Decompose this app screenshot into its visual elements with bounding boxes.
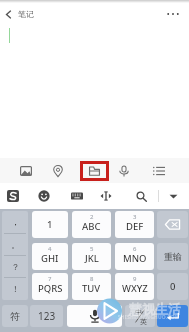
- staticText: 9: [133, 275, 137, 283]
- staticText: 2: [90, 213, 94, 221]
- button[interactable]: Enter: [157, 305, 188, 327]
- button[interactable]: ？: [2, 256, 28, 278]
- staticText: ？: [11, 262, 20, 273]
- staticText: SHISHISHENGHUO.COM: [118, 314, 180, 320]
- button[interactable]: Insert image: [15, 158, 37, 183]
- button[interactable]: Hide keyboard: [162, 183, 184, 209]
- staticText: 3: [133, 213, 137, 221]
- staticText: TUV: [82, 282, 101, 295]
- staticText: 5: [90, 245, 94, 253]
- staticText: 重输: [164, 251, 182, 262]
- staticText: 符: [10, 310, 20, 323]
- button[interactable]: Keyboard settings: [66, 183, 88, 209]
- button[interactable]: Chinese English toggle: [125, 305, 155, 327]
- staticText: 0: [170, 280, 176, 293]
- staticText: ABC: [82, 220, 101, 233]
- button[interactable]: Backspace: [157, 211, 188, 238]
- button[interactable]: 4: [32, 243, 68, 270]
- staticText: MNO: [123, 252, 147, 265]
- button[interactable]: Zero: [157, 273, 188, 300]
- button[interactable]: Redo: [157, 243, 188, 270]
- staticText: JKL: [85, 252, 99, 265]
- button[interactable]: 1: [32, 211, 68, 238]
- button[interactable]: Folder: [80, 161, 109, 181]
- staticText: ，: [11, 216, 20, 227]
- staticText: 。: [11, 239, 20, 250]
- staticText: PQRS: [38, 282, 63, 295]
- button[interactable]: 8: [72, 273, 111, 300]
- button[interactable]: More options: [163, 3, 183, 25]
- staticText: DEF: [126, 220, 144, 233]
- button[interactable]: Numbers: [30, 305, 63, 327]
- staticText: 8: [90, 275, 94, 283]
- button[interactable]: Move cursor: [95, 183, 117, 209]
- button[interactable]: Checklist: [148, 158, 170, 183]
- staticText: GHI: [41, 252, 59, 265]
- button[interactable]: Voice input: [113, 158, 135, 183]
- button[interactable]: Search: [130, 183, 152, 209]
- staticText: WXYZ: [122, 282, 148, 295]
- button[interactable]: Voice input: [67, 305, 122, 327]
- button[interactable]: ！: [2, 278, 28, 300]
- button[interactable]: ，: [2, 211, 28, 234]
- button[interactable]: 6: [115, 243, 154, 270]
- button[interactable]: 7: [32, 273, 68, 300]
- staticText: 4: [48, 245, 52, 253]
- staticText: 6: [133, 245, 137, 253]
- button[interactable]: Sogou input: [2, 183, 24, 209]
- button[interactable]: 2: [72, 211, 111, 238]
- staticText: 中: [135, 308, 142, 317]
- button[interactable]: 9: [115, 273, 154, 300]
- button[interactable]: Symbols: [2, 305, 28, 327]
- button[interactable]: Location: [47, 158, 69, 183]
- staticText: 笔记: [18, 9, 34, 19]
- button[interactable]: Emoji: [33, 183, 55, 209]
- staticText: 慧视生活: [129, 301, 181, 317]
- staticText: ！: [11, 284, 20, 295]
- button[interactable]: 。: [2, 234, 28, 256]
- button[interactable]: 5: [72, 243, 111, 270]
- staticText: 英: [140, 317, 147, 326]
- staticText: 1: [47, 218, 53, 231]
- button[interactable]: 3: [115, 211, 154, 238]
- staticText: 7: [48, 275, 52, 283]
- staticText: 123: [38, 309, 56, 323]
- button[interactable]: Back: [0, 3, 16, 25]
